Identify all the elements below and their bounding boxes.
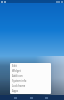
button[interactable]: Add icon [10,73,51,78]
staticText: Apps [12,89,19,93]
button[interactable]: Recents [44,96,48,99]
button[interactable]: Edit [10,63,51,68]
button[interactable]: Home [29,96,33,99]
staticText: System info [12,79,27,83]
button[interactable]: Widget [10,68,51,73]
staticText: Widget [12,69,21,73]
button[interactable]: Back [13,96,17,99]
staticText: Add icon [12,74,23,78]
button[interactable]: Apps [10,88,51,93]
button[interactable]: System info [10,78,51,83]
staticText: Lock home [12,84,26,88]
button[interactable]: Lock home [10,83,51,88]
staticText: Edit [12,64,17,68]
